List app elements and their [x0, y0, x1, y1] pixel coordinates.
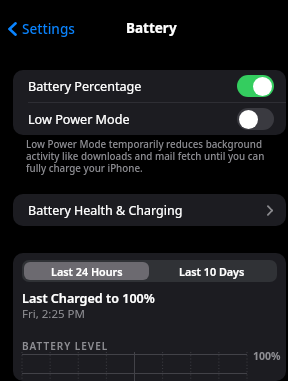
- staticText: Last 24 Hours: [51, 264, 123, 279]
- button[interactable]: Low Power Mode: [13, 103, 286, 135]
- button[interactable]: Settings: [6, 17, 77, 40]
- staticText: Last 10 Days: [179, 264, 245, 279]
- button[interactable]: Battery Percentage: [13, 70, 286, 102]
- button[interactable]: Last 10 Days: [149, 262, 275, 280]
- staticText: Low Power Mode: [28, 111, 130, 128]
- staticText: Settings: [22, 19, 75, 38]
- button[interactable]: Toggle off: [237, 108, 274, 130]
- staticText: Battery: [126, 19, 177, 37]
- staticText: Low Power Mode temporarily reduces backg…: [26, 138, 274, 175]
- staticText: Fri, 2:25 PM: [22, 306, 85, 322]
- staticText: BATTERY LEVEL: [22, 339, 109, 353]
- staticText: Battery Health & Charging: [28, 202, 183, 219]
- button[interactable]: Toggle on: [237, 75, 274, 97]
- staticText: Last Charged to 100%: [22, 290, 155, 307]
- staticText: 100%: [253, 349, 281, 363]
- button[interactable]: Battery Health & Charging: [13, 194, 286, 226]
- staticText: Battery Percentage: [28, 78, 142, 95]
- button[interactable]: Last 24 Hours: [24, 262, 149, 280]
